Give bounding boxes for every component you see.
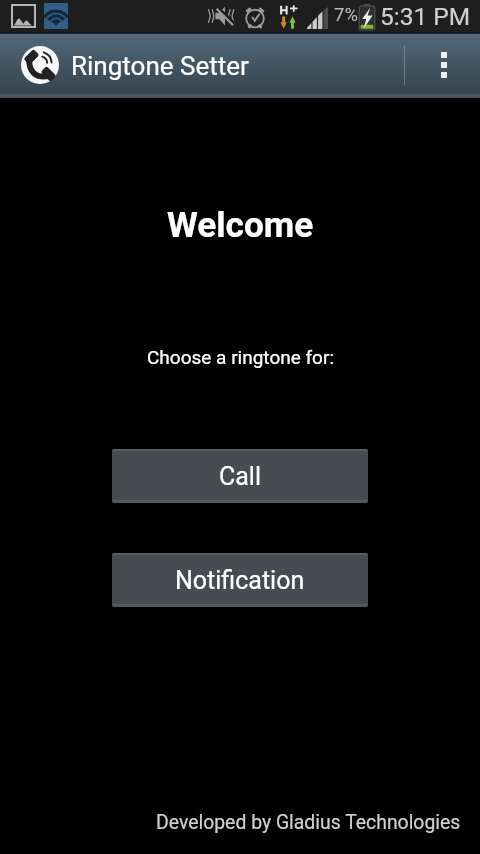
staticText: 5:31 PM [380,2,471,31]
button[interactable]: Call [112,449,368,503]
staticText: Ringtone Setter [71,51,249,81]
staticText: Developed by Gladius Technologies [156,811,461,834]
button[interactable]: Notification [112,553,368,607]
staticText: Welcome [167,204,314,245]
staticText: Call [219,462,262,491]
button[interactable]: More options [420,32,480,98]
staticText: Notification [175,566,305,595]
staticText: 7% [334,4,358,26]
staticText: Choose a ringtone for: [147,346,334,368]
